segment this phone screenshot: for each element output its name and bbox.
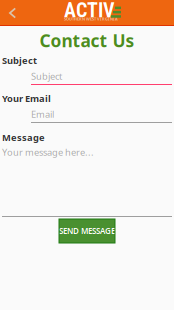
staticText: Your message here... bbox=[2, 146, 94, 156]
staticText: SEND MESSAGE bbox=[59, 226, 115, 236]
button[interactable]: Subject bbox=[2, 65, 172, 85]
staticText: ACTIV bbox=[64, 0, 115, 22]
staticText: Message bbox=[2, 131, 45, 144]
staticText: Your Email bbox=[2, 92, 51, 105]
staticText: SOUTHERN WEST VIRGINIA bbox=[64, 16, 118, 22]
staticText: Subject bbox=[2, 54, 37, 67]
button[interactable]: Back bbox=[0, 0, 25, 26]
staticText: Email bbox=[31, 108, 54, 118]
button[interactable]: SEND MESSAGE bbox=[59, 219, 115, 243]
button[interactable]: Message bbox=[0, 133, 174, 217]
staticText: Contact Us bbox=[39, 29, 134, 52]
staticText: Subject bbox=[31, 70, 62, 80]
button[interactable]: Email bbox=[2, 103, 172, 123]
